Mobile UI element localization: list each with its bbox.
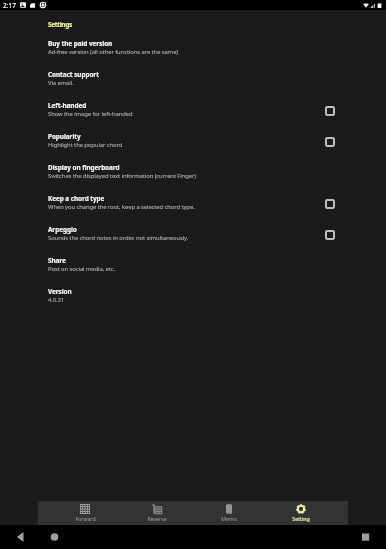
staticText: Memo [221, 515, 237, 522]
button[interactable]: Forward [49, 501, 121, 525]
button[interactable]: Keep a chord type [0, 194, 386, 225]
button[interactable]: Setting [265, 501, 337, 525]
staticText: Setting [292, 515, 310, 522]
button[interactable]: Arpeggio [0, 225, 386, 256]
staticText: Settings [48, 20, 72, 29]
staticText: 4.0.31 [48, 296, 65, 304]
staticText: Sounds the chord notes in order, not sim… [48, 234, 189, 242]
button[interactable]: Buy the paid version [0, 39, 386, 70]
button[interactable]: Reverse [121, 501, 193, 525]
button[interactable]: Display on fingerboard [0, 163, 386, 194]
staticText: Display on fingerboard [48, 163, 120, 172]
staticText: Popularity [48, 132, 81, 141]
staticText: Ad-free version (all other functions are… [48, 48, 179, 56]
staticText: Keep a chord type [48, 194, 105, 203]
button[interactable]: Share [0, 256, 386, 287]
staticText: Left-handed [48, 101, 87, 110]
staticText: Forward [75, 515, 96, 522]
button[interactable]: Popularity [0, 132, 386, 163]
staticText: Arpeggio [48, 225, 77, 234]
staticText: When you change the root, keep a selecte… [48, 203, 195, 211]
staticText: Reverse [147, 515, 167, 522]
staticText: Show the image for left-handed [48, 110, 133, 118]
staticText: Version [48, 287, 72, 296]
staticText: 2:17 [3, 1, 16, 10]
staticText: Post on social media, etc. [48, 265, 116, 273]
button[interactable]: Memo [193, 501, 265, 525]
button[interactable]: Contact support [0, 70, 386, 101]
staticText: Via email. [48, 79, 74, 87]
staticText: Contact support [48, 70, 99, 79]
staticText: Share [48, 256, 66, 265]
staticText: Switches the displayed text information … [48, 172, 197, 180]
button[interactable]: Left-handed [0, 101, 386, 132]
button[interactable]: Version [0, 287, 386, 318]
staticText: Highlight the popular chord [48, 141, 123, 149]
staticText: Buy the paid version [48, 39, 113, 48]
